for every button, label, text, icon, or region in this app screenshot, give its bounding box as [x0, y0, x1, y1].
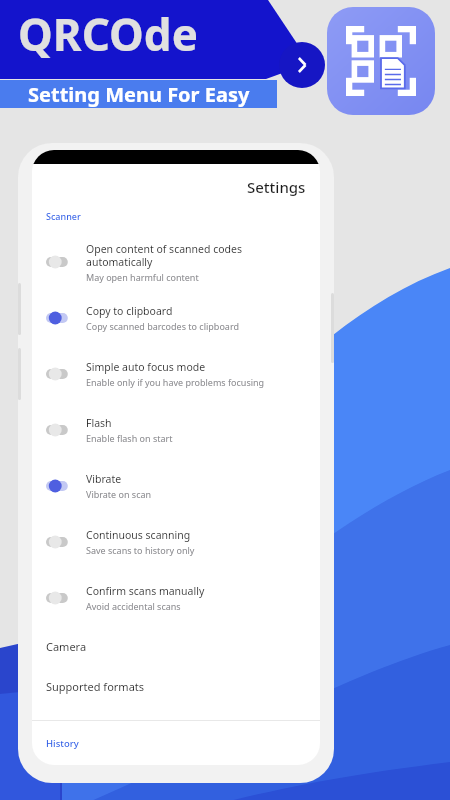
- staticText: Enable flash on start: [86, 432, 173, 444]
- button[interactable]: Confirm scans manually: [32, 570, 320, 626]
- button[interactable]: Open content of scanned codes automatica…: [32, 234, 320, 290]
- staticText: Avoid accidental scans: [86, 600, 181, 612]
- staticText: Copy to clipboard: [86, 304, 173, 318]
- staticText: Flash: [86, 416, 112, 430]
- staticText: Open content of scanned codes automatica…: [86, 242, 242, 269]
- staticText: Settings: [247, 177, 306, 197]
- staticText: Vibrate: [86, 472, 122, 486]
- staticText: Camera: [46, 639, 87, 654]
- staticText: Enable only if you have problems focusin…: [86, 376, 265, 388]
- button[interactable]: Copy to clipboard: [32, 290, 320, 346]
- staticText: Simple auto focus mode: [86, 360, 206, 374]
- button[interactable]: Supported formats: [32, 666, 320, 706]
- staticText: Setting Menu For Easy: [28, 81, 250, 108]
- button[interactable]: Simple auto focus mode: [32, 346, 320, 402]
- button[interactable]: Vibrate: [32, 458, 320, 514]
- button[interactable]: QR Code app icon: [327, 7, 435, 115]
- staticText: Copy scanned barcodes to clipboard: [86, 320, 239, 332]
- staticText: Continuous scanning: [86, 528, 191, 542]
- button[interactable]: Continuous scanning: [32, 514, 320, 570]
- button[interactable]: Camera: [32, 626, 320, 666]
- staticText: QRCOde: [18, 4, 198, 64]
- staticText: Save scans to history only: [86, 544, 195, 556]
- button[interactable]: History: [32, 721, 320, 765]
- staticText: Scanner: [46, 210, 81, 222]
- staticText: Vibrate on scan: [86, 488, 152, 500]
- staticText: Supported formats: [46, 679, 145, 694]
- staticText: History: [46, 737, 79, 750]
- staticText: May open harmful content: [86, 271, 199, 283]
- staticText: Confirm scans manually: [86, 584, 205, 598]
- button[interactable]: Flash: [32, 402, 320, 458]
